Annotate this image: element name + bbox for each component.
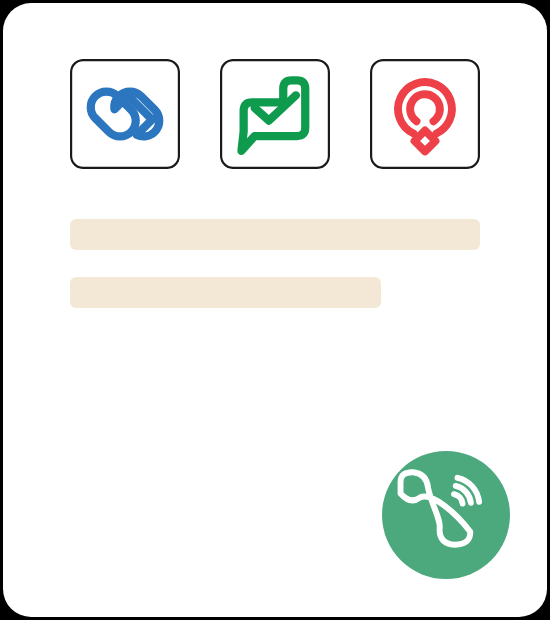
button[interactable]: Message approved bbox=[220, 59, 330, 169]
button[interactable]: Call bbox=[382, 451, 510, 579]
button[interactable]: Location pin bbox=[370, 59, 480, 169]
button[interactable]: Linked chains bbox=[70, 59, 180, 169]
